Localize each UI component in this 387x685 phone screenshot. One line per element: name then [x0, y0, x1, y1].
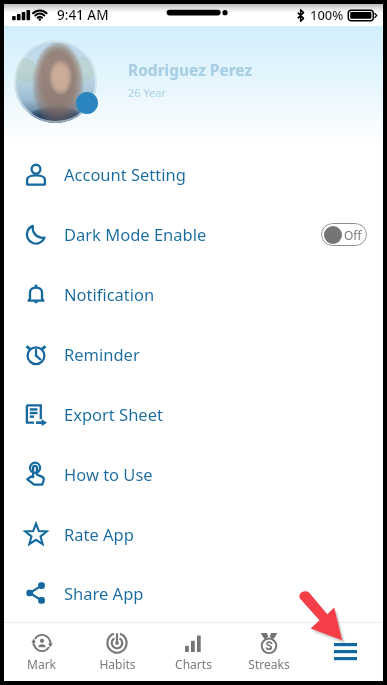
- staticText: Rodriguez Perez: [128, 59, 253, 80]
- staticText: Dark Mode Enable: [64, 223, 207, 245]
- staticText: Rate App: [64, 523, 134, 545]
- button[interactable]: Habits: [79, 623, 155, 681]
- button[interactable]: Export Sheet: [4, 384, 383, 444]
- staticText: Export Sheet: [64, 403, 163, 425]
- button[interactable]: Mark: [4, 623, 79, 681]
- button[interactable]: Streaks: [231, 623, 307, 681]
- staticText: Off: [344, 227, 362, 243]
- staticText: Charts: [175, 656, 212, 672]
- staticText: Streaks: [248, 656, 290, 672]
- button[interactable]: Rate App: [4, 504, 383, 564]
- staticText: How to Use: [64, 463, 153, 485]
- button[interactable]: How to Use: [4, 444, 383, 504]
- staticText: 9:41 AM: [57, 6, 109, 24]
- staticText: Habits: [99, 656, 136, 672]
- button[interactable]: Menu: [307, 623, 383, 681]
- button[interactable]: Account Setting: [4, 144, 383, 204]
- staticText: Reminder: [64, 343, 140, 365]
- button[interactable]: Notification: [4, 264, 383, 324]
- staticText: 26 Year: [128, 85, 167, 100]
- button[interactable]: Dark Mode Enable: [4, 204, 383, 264]
- button[interactable]: Reminder: [4, 324, 383, 384]
- staticText: Notification: [64, 283, 155, 305]
- button[interactable]: Share App: [4, 564, 383, 622]
- button[interactable]: Charts: [155, 623, 231, 681]
- button[interactable]: Dark mode toggle, off: [321, 223, 367, 246]
- staticText: Mark: [27, 656, 56, 672]
- staticText: Account Setting: [64, 163, 186, 185]
- staticText: 100%: [310, 6, 344, 24]
- staticText: Share App: [64, 582, 144, 604]
